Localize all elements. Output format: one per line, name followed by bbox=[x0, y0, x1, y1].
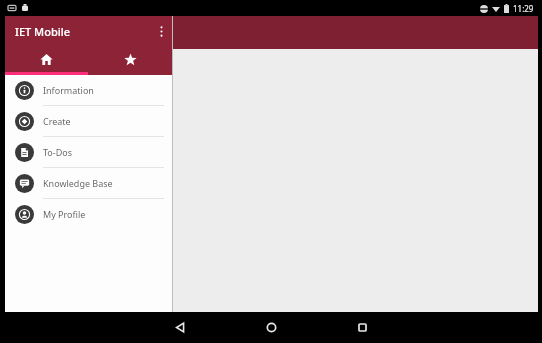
button[interactable]: Home bbox=[5, 46, 88, 72]
button[interactable]: Back bbox=[157, 312, 203, 343]
staticText: My Profile bbox=[43, 208, 86, 220]
staticText: Create bbox=[43, 115, 71, 127]
staticText: To-Dos bbox=[43, 146, 73, 158]
button[interactable]: Information bbox=[5, 75, 172, 105]
button[interactable]: Create bbox=[5, 106, 172, 136]
button[interactable]: Favourites bbox=[88, 46, 172, 72]
button[interactable]: My Profile bbox=[5, 199, 172, 229]
button[interactable]: To-Dos bbox=[5, 137, 172, 167]
staticText: 11:29 bbox=[513, 3, 534, 14]
button[interactable]: More options bbox=[150, 16, 172, 46]
staticText: Information bbox=[43, 84, 94, 96]
staticText: Knowledge Base bbox=[43, 177, 113, 189]
button[interactable]: Knowledge Base bbox=[5, 168, 172, 198]
button[interactable]: Recent apps bbox=[339, 312, 385, 343]
button[interactable]: Home bbox=[248, 312, 294, 343]
staticText: IET Mobile bbox=[15, 24, 70, 39]
